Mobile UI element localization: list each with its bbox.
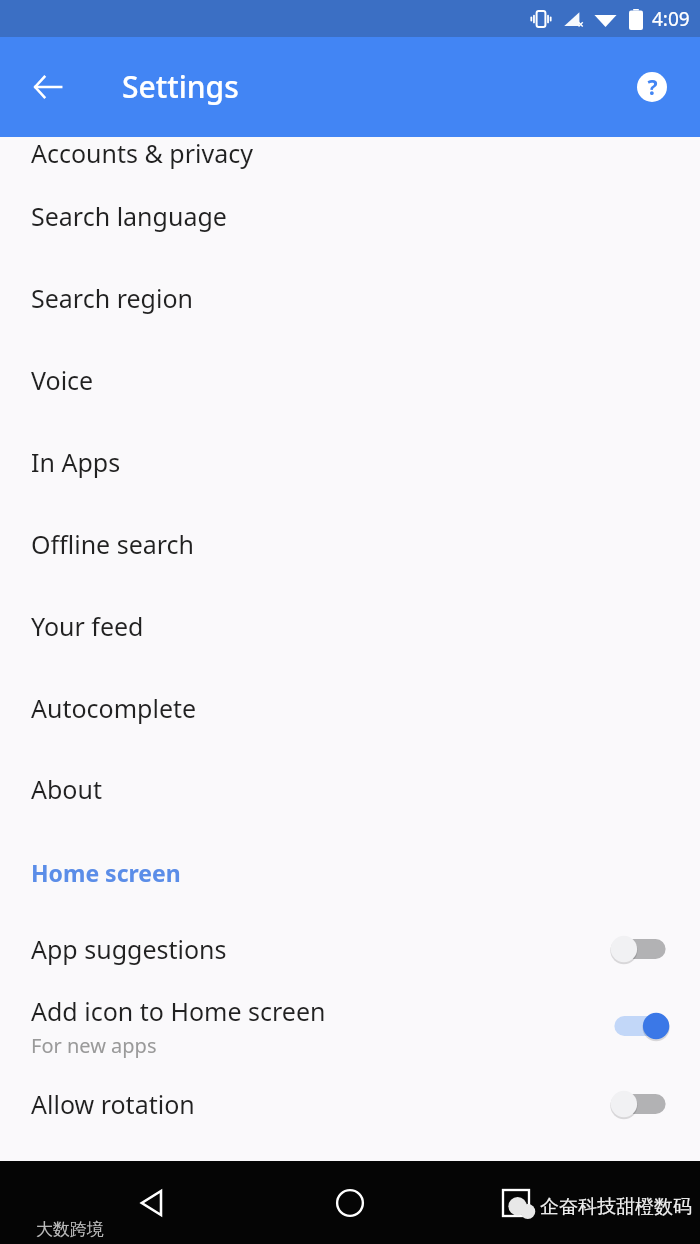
staticText: Search region: [31, 281, 193, 315]
button[interactable]: Your feed: [0, 585, 700, 667]
button[interactable]: In Apps: [0, 421, 700, 503]
button[interactable]: Accounts & privacy: [0, 137, 700, 175]
staticText: About: [31, 772, 102, 806]
button[interactable]: Off: [608, 1084, 672, 1124]
button[interactable]: Voice: [0, 339, 700, 421]
staticText: 大数跨境: [36, 1219, 104, 1240]
staticText: App suggestions: [31, 932, 227, 966]
staticText: Offline search: [31, 527, 195, 561]
button[interactable]: Back: [120, 1171, 184, 1235]
button[interactable]: Search language: [0, 175, 700, 257]
staticText: Add icon to Home screen: [31, 994, 326, 1028]
staticText: For new apps: [31, 1032, 157, 1059]
button[interactable]: About: [0, 748, 700, 830]
button[interactable]: Add icon to Home screen: [0, 984, 700, 1068]
button[interactable]: Recent apps: [484, 1171, 548, 1235]
staticText: Allow rotation: [31, 1087, 195, 1121]
button[interactable]: App suggestions: [0, 914, 700, 984]
button[interactable]: Search region: [0, 257, 700, 339]
staticText: Voice: [31, 363, 94, 397]
button[interactable]: Offline search: [0, 503, 700, 585]
button[interactable]: Allow rotation: [0, 1068, 700, 1140]
staticText: 4:09: [652, 6, 690, 32]
staticText: ?: [647, 73, 658, 102]
staticText: 企奋科技甜橙数码: [540, 1195, 692, 1219]
staticText: Search language: [31, 199, 227, 233]
staticText: Autocomplete: [31, 691, 197, 725]
staticText: Home screen: [31, 857, 181, 888]
button[interactable]: Off: [608, 929, 672, 969]
button[interactable]: Back: [20, 59, 76, 115]
button[interactable]: Autocomplete: [0, 667, 700, 748]
staticText: Your feed: [31, 609, 144, 643]
button[interactable]: Help: [624, 59, 680, 115]
button[interactable]: On: [608, 1006, 672, 1046]
staticText: In Apps: [31, 445, 121, 479]
staticText: Accounts & privacy: [31, 136, 253, 170]
staticText: Settings: [122, 66, 239, 107]
button[interactable]: Home: [318, 1171, 382, 1235]
